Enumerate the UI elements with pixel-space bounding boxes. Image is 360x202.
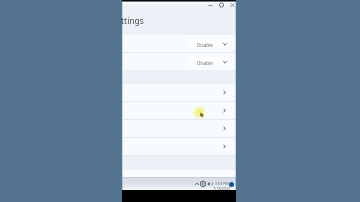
button[interactable]: Disable xyxy=(186,57,229,66)
staticText: 7/18/2023 xyxy=(213,186,231,191)
button[interactable]: Close xyxy=(227,0,238,10)
button[interactable]: Minimize xyxy=(205,0,216,10)
button[interactable]: Disable xyxy=(122,53,236,70)
button[interactable]: Open item xyxy=(122,84,236,101)
button[interactable]: Disable xyxy=(186,39,229,48)
staticText: 3:53 PM xyxy=(215,181,229,186)
button[interactable]: Show hidden icons xyxy=(193,180,201,188)
button[interactable]: 3:53 PM xyxy=(208,181,236,191)
staticText: ttings xyxy=(121,15,144,27)
button[interactable]: Cloud storage xyxy=(199,180,207,188)
button[interactable]: Open item xyxy=(122,102,236,119)
button[interactable]: Notifications xyxy=(229,182,234,187)
button[interactable]: Disable xyxy=(122,35,236,52)
button[interactable]: Open item xyxy=(122,120,236,137)
staticText: Disable xyxy=(197,42,213,48)
button[interactable]: Restore xyxy=(216,0,227,10)
button[interactable]: Volume xyxy=(206,180,214,188)
staticText: Disable xyxy=(197,60,213,66)
button[interactable]: Open item xyxy=(122,138,236,155)
